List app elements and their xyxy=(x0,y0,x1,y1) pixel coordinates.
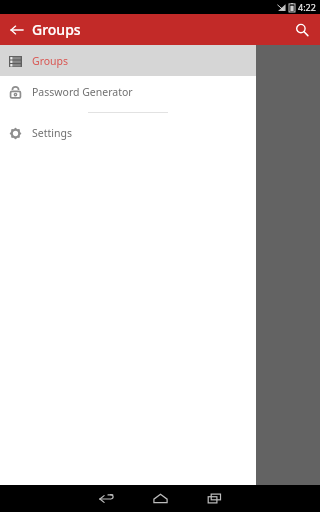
button[interactable]: Back xyxy=(79,485,133,512)
staticText: Password Generator xyxy=(32,85,133,99)
staticText: Settings xyxy=(32,126,72,140)
staticText: Groups xyxy=(32,20,81,39)
button[interactable]: Password Generator xyxy=(0,76,256,107)
button[interactable]: Search xyxy=(290,18,314,42)
staticText: Groups xyxy=(32,54,69,68)
button[interactable]: Settings xyxy=(0,117,256,148)
button[interactable]: Back xyxy=(6,19,28,41)
button[interactable]: Groups xyxy=(0,45,256,76)
button[interactable]: Home xyxy=(133,485,187,512)
button[interactable]: Recent apps xyxy=(187,485,241,512)
staticText: 4:22 xyxy=(298,1,316,13)
